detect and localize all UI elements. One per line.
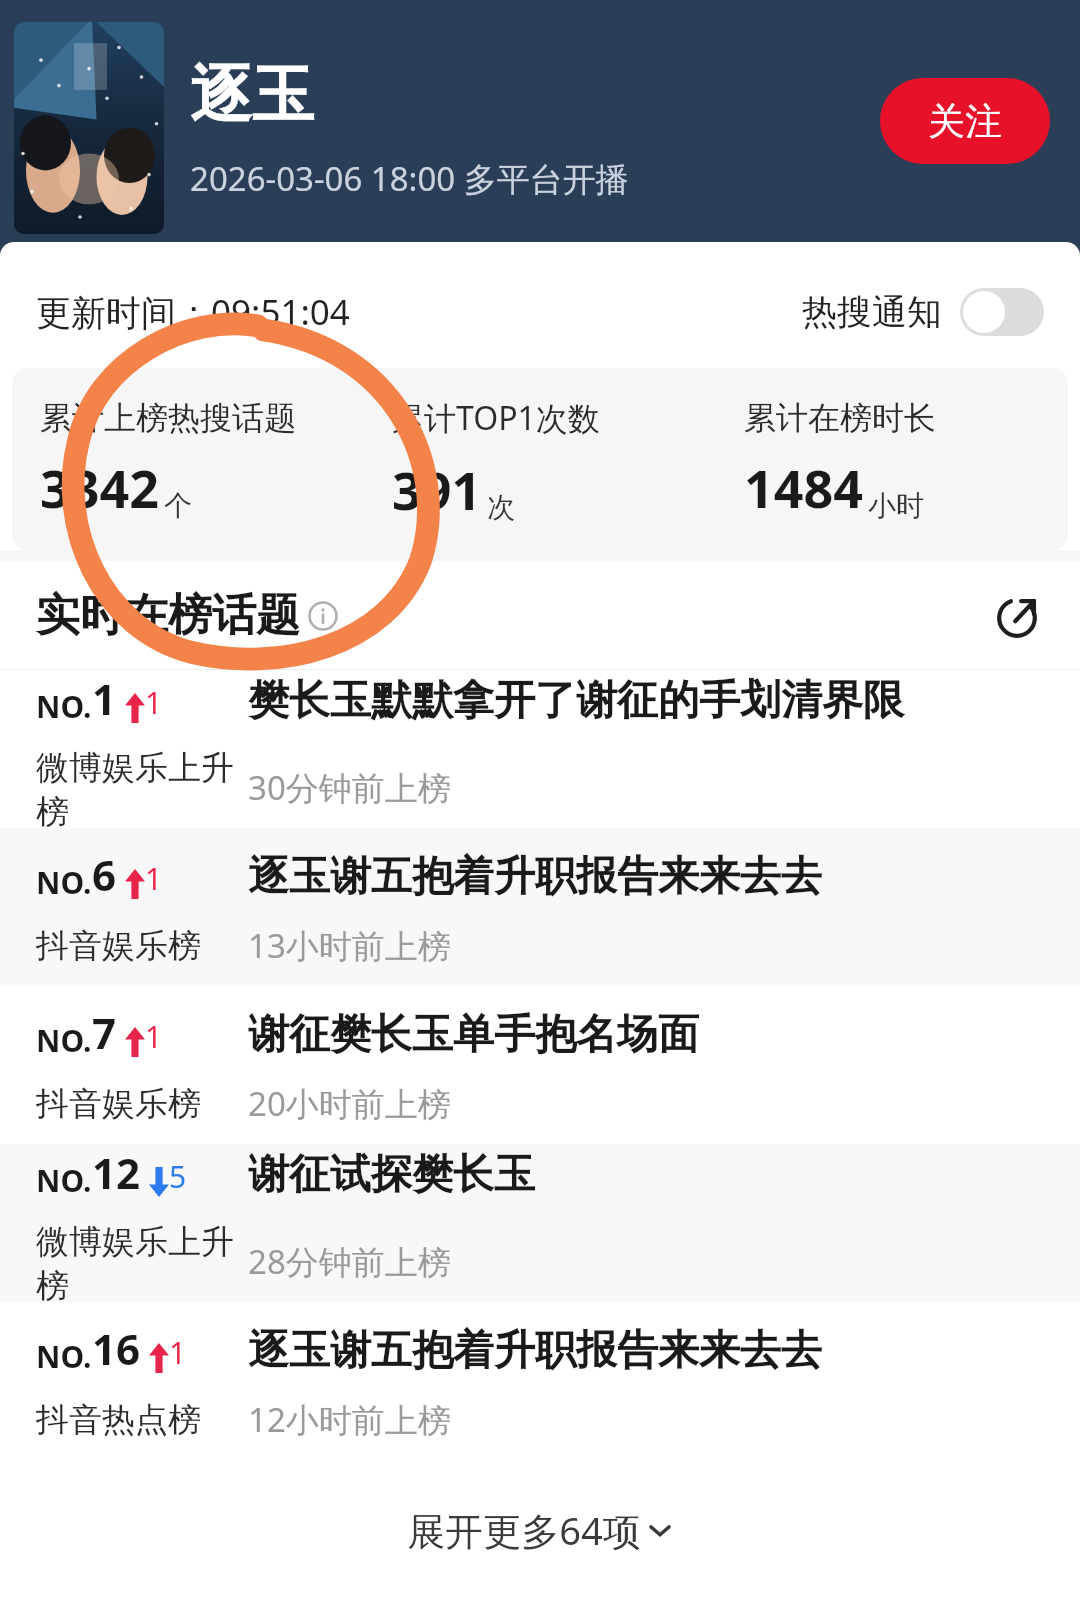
staticText: 个 (164, 488, 192, 523)
staticText: 1 (145, 1016, 163, 1057)
staticText: 12 (92, 1144, 141, 1201)
button[interactable]: NO. (0, 986, 1080, 1144)
staticText: 次 (487, 490, 515, 525)
staticText: 微博娱乐上升榜 (36, 747, 248, 828)
staticText: 2026-03-06 18:00 多平台开播 (190, 156, 629, 201)
staticText: NO. (36, 686, 92, 727)
button[interactable]: 关注 (880, 78, 1050, 164)
staticText: 累计TOP1次数 (392, 396, 600, 440)
staticText: 抖音热点榜 (36, 1399, 201, 1441)
staticText: 樊长玉默默拿开了谢征的手划清界限 (248, 675, 904, 727)
staticText: 抖音娱乐榜 (36, 925, 201, 967)
button[interactable]: NO. (0, 1144, 1080, 1302)
staticText: 累计上榜热搜话题 (40, 398, 296, 438)
staticText: 3342 (40, 452, 159, 523)
staticText: NO. (36, 1336, 92, 1377)
staticText: 1 (169, 1332, 187, 1373)
staticText: 谢征试探樊长玉 (248, 1149, 535, 1201)
button[interactable]: NO. (0, 828, 1080, 986)
staticText: 1 (145, 858, 163, 899)
staticText: 20小时前上榜 (248, 1081, 451, 1126)
button[interactable]: 热搜通知 (802, 288, 1044, 336)
staticText: 12小时前上榜 (248, 1397, 451, 1442)
other: 热搜通知开关 (960, 288, 1044, 336)
staticText: 30分钟前上榜 (248, 765, 451, 810)
staticText: 28分钟前上榜 (248, 1239, 451, 1284)
staticText: 逐玉 (190, 56, 314, 134)
button[interactable]: 累计在榜时长 (716, 368, 1068, 550)
staticText: 5 (169, 1156, 187, 1197)
staticText: 391 (392, 454, 482, 525)
staticText: 1484 (744, 452, 863, 523)
button[interactable]: 累计上榜热搜话题 (12, 368, 364, 550)
staticText: NO. (36, 1020, 92, 1061)
button[interactable]: NO. (0, 670, 1080, 828)
staticText: 13小时前上榜 (248, 923, 451, 968)
staticText: 累计在榜时长 (744, 398, 936, 438)
staticText: 热搜通知 (802, 290, 942, 334)
staticText: 谢征樊长玉单手抱名场面 (248, 1009, 699, 1061)
staticText: 1 (92, 670, 117, 727)
staticText: 逐玉谢五抱着升职报告来来去去 (248, 851, 822, 903)
staticText: NO. (36, 862, 92, 903)
button[interactable]: NO. (0, 1302, 1080, 1460)
staticText: 实时在榜话题 (36, 588, 300, 643)
button[interactable]: 累计TOP1次数 (364, 368, 716, 550)
staticText: 小时 (868, 488, 924, 523)
button[interactable]: 展开更多64项 (0, 1460, 1080, 1600)
button[interactable]: 实时在榜话题 (36, 588, 338, 643)
staticText: 6 (92, 846, 117, 903)
staticText: 展开更多64项 (407, 1504, 641, 1556)
staticText: 7 (92, 1004, 117, 1061)
staticText: 抖音娱乐榜 (36, 1083, 201, 1125)
other: 说明 (308, 601, 338, 631)
staticText: NO. (36, 1160, 92, 1201)
button[interactable]: 分享 (990, 588, 1044, 642)
staticText: 逐玉谢五抱着升职报告来来去去 (248, 1325, 822, 1377)
staticText: 16 (92, 1320, 141, 1377)
staticText: 1 (145, 682, 163, 723)
staticText: 更新时间：09:51:04 (36, 288, 350, 336)
staticText: 微博娱乐上升榜 (36, 1221, 248, 1302)
staticText: 关注 (928, 98, 1002, 145)
